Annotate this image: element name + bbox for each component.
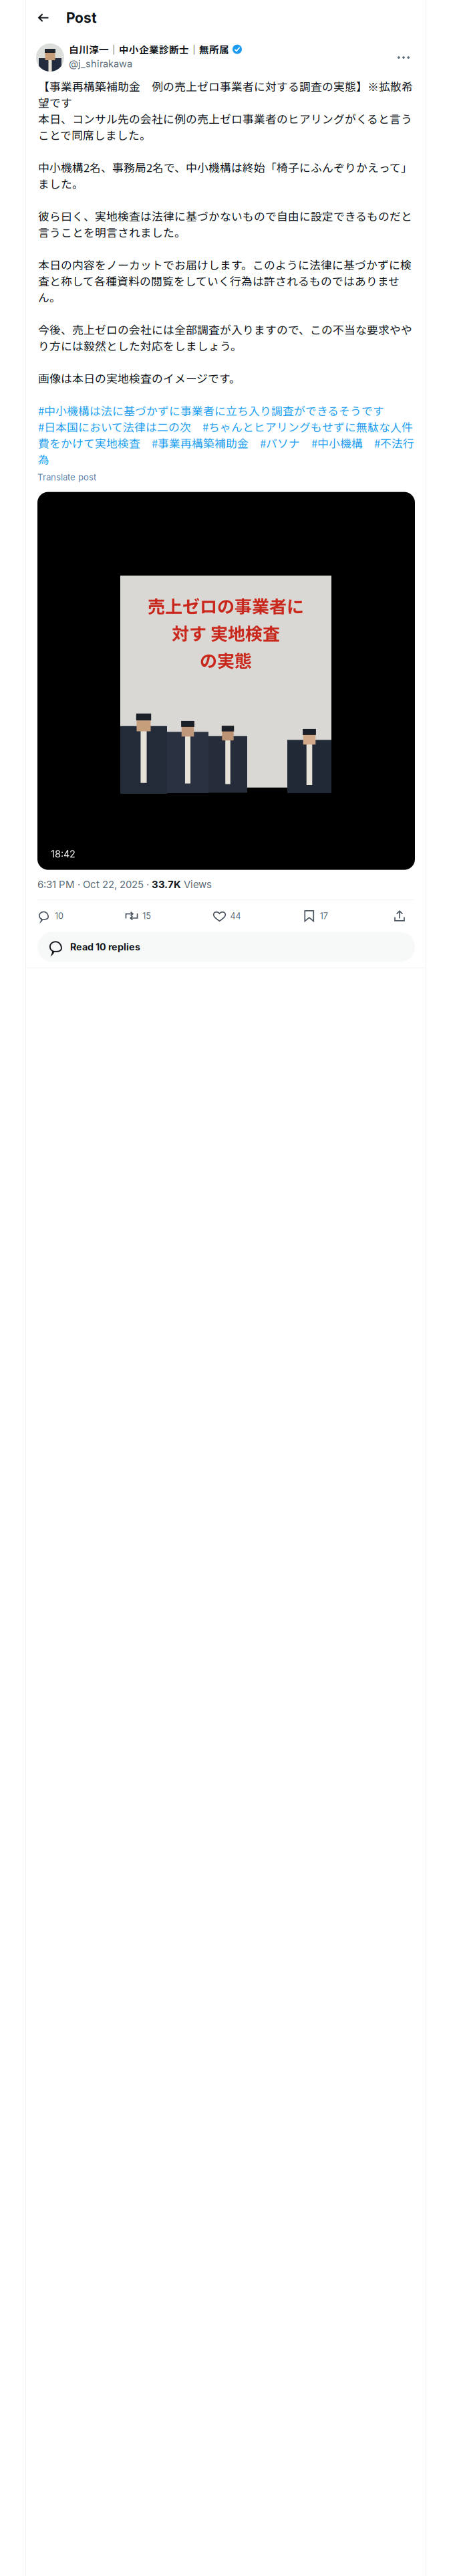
button[interactable]: Read 10 replies bbox=[37, 932, 415, 962]
staticText: 白川淳一｜中小企業診断士｜無所属 bbox=[69, 42, 229, 56]
button[interactable]: Translate post bbox=[25, 467, 96, 484]
button[interactable]: More options bbox=[392, 46, 415, 69]
staticText: 6:31 PM · Oct 22, 2025 · bbox=[37, 878, 152, 891]
button[interactable]: 44 bbox=[213, 906, 241, 926]
staticText: 44 bbox=[230, 911, 241, 921]
button[interactable]: 15 bbox=[125, 906, 151, 926]
staticText: Translate post bbox=[37, 472, 96, 483]
button[interactable]: 17 bbox=[303, 906, 328, 926]
staticText: 15 bbox=[142, 911, 151, 921]
staticText: Views bbox=[181, 878, 212, 891]
staticText: 33.7K bbox=[152, 878, 181, 891]
staticText: 18:42 bbox=[51, 848, 76, 860]
staticText: @j_shirakawa bbox=[69, 58, 132, 69]
button[interactable]: Share bbox=[390, 906, 410, 926]
staticText: 10 bbox=[55, 911, 63, 921]
button[interactable]: Back bbox=[31, 6, 55, 30]
staticText: の実態 bbox=[200, 647, 252, 672]
staticText: 17 bbox=[320, 911, 328, 921]
staticText: 【事業再構築補助金 例の売上ゼロ事業者に対する調査の実態】※拡散希望です 本日、… bbox=[38, 78, 413, 386]
staticText: #中小機構は法に基づかずに事業者に立ち入り調査ができるそうです #日本国において… bbox=[38, 386, 414, 467]
staticText: 売上ゼロの事業者に bbox=[148, 593, 304, 618]
staticText: Post bbox=[66, 9, 97, 26]
button[interactable]: 10 bbox=[37, 906, 63, 926]
staticText: 対す 実地検査 bbox=[172, 620, 280, 645]
staticText: Read 10 replies bbox=[70, 941, 140, 953]
